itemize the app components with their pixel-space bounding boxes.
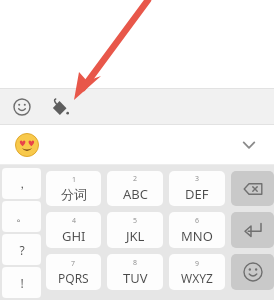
button[interactable]: 6	[169, 212, 225, 248]
button[interactable]: Emoji	[231, 254, 274, 290]
staticText: 1	[72, 175, 77, 185]
staticText: PQRS	[58, 270, 89, 286]
button[interactable]: 1	[46, 171, 101, 206]
button[interactable]: 7	[46, 254, 101, 290]
button[interactable]: 4	[46, 212, 101, 248]
button[interactable]: 9	[169, 254, 225, 290]
staticText: 4	[72, 216, 77, 226]
button[interactable]: Emoji	[10, 95, 34, 119]
staticText: ?	[19, 242, 25, 258]
staticText: 分词	[61, 186, 87, 202]
staticText: 5	[133, 216, 138, 226]
staticText: 3	[195, 174, 200, 184]
staticText: !	[20, 275, 24, 291]
button[interactable]: Collapse	[236, 132, 262, 158]
staticText: GHI	[62, 227, 86, 245]
staticText: 。	[16, 209, 28, 224]
button[interactable]: Enter	[231, 212, 274, 248]
staticText: 9	[195, 259, 200, 269]
staticText: 6	[195, 216, 200, 226]
button[interactable]: 。	[2, 201, 41, 232]
staticText: JKL	[126, 227, 145, 245]
button[interactable]: Heart eyes emoji	[14, 132, 40, 158]
button[interactable]: Theme	[47, 95, 71, 119]
staticText: 2	[133, 174, 138, 184]
button[interactable]: 5	[107, 212, 163, 248]
button[interactable]: 8	[107, 254, 163, 290]
button[interactable]: Backspace	[231, 171, 274, 206]
button[interactable]: !	[2, 267, 41, 298]
button[interactable]: 2	[107, 171, 163, 206]
staticText: DEF	[185, 185, 209, 203]
button[interactable]: 3	[169, 171, 225, 206]
staticText: TUV	[123, 269, 148, 287]
staticText: WXYZ	[181, 270, 213, 286]
staticText: ABC	[123, 185, 148, 203]
button[interactable]: ，	[2, 168, 41, 199]
staticText: MNO	[181, 227, 213, 245]
staticText: 7	[71, 259, 76, 269]
button[interactable]: ?	[2, 234, 41, 265]
staticText: ，	[16, 176, 28, 191]
staticText: 8	[133, 258, 138, 268]
